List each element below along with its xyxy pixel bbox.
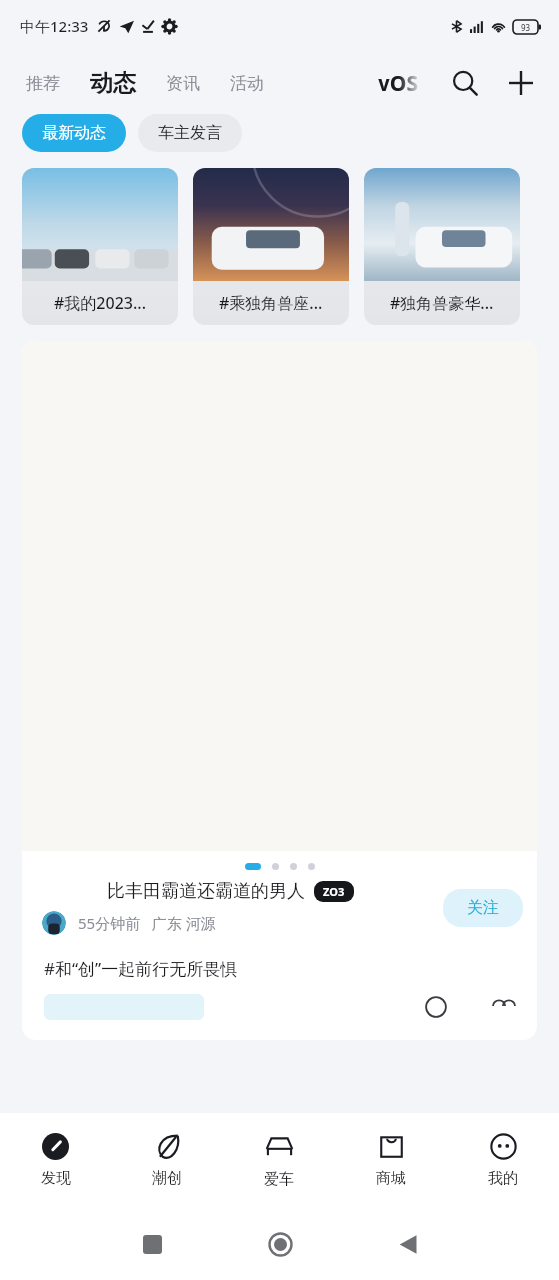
- staticText: 动态: [90, 69, 136, 98]
- button[interactable]: 发现: [0, 1113, 111, 1208]
- staticText: #独角兽豪华...: [390, 292, 494, 314]
- button[interactable]: Recents: [124, 1216, 180, 1272]
- staticText: 商城: [376, 1169, 406, 1188]
- staticText: 我的: [488, 1169, 518, 1188]
- button[interactable]: 车主发言: [138, 114, 242, 152]
- staticText: 车主发言: [158, 123, 222, 143]
- staticText: 活动: [230, 73, 264, 94]
- button[interactable]: 最新动态: [22, 114, 126, 152]
- staticText: 55分钟前 广东 河源: [78, 913, 216, 933]
- staticText: 中午12:33: [20, 16, 89, 36]
- button[interactable]: Home: [252, 1216, 308, 1272]
- button[interactable]: #乘独角兽座...: [193, 168, 349, 325]
- button[interactable]: Search: [445, 63, 485, 103]
- staticText: ZO3: [323, 884, 345, 899]
- button[interactable]: 动态: [88, 63, 138, 104]
- staticText: 爱车: [264, 1170, 294, 1189]
- button[interactable]: ᴠOS: [374, 65, 423, 102]
- staticText: #乘独角兽座...: [219, 292, 323, 314]
- button[interactable]: 我的: [447, 1113, 559, 1208]
- button[interactable]: 关注: [443, 889, 523, 927]
- staticText: 推荐: [26, 73, 60, 94]
- button[interactable]: 比丰田霸道还霸道的男人: [22, 341, 537, 1040]
- button[interactable]: Add: [501, 63, 541, 103]
- staticText: 资讯: [166, 73, 200, 94]
- button[interactable]: 潮创: [111, 1113, 223, 1208]
- staticText: #我的2023...: [54, 292, 147, 314]
- button[interactable]: #我的2023...: [22, 168, 178, 325]
- button[interactable]: 资讯: [164, 67, 202, 100]
- staticText: 最新动态: [42, 123, 106, 143]
- button[interactable]: 爱车: [223, 1113, 335, 1208]
- staticText: ᴠOS: [378, 69, 419, 98]
- staticText: #和“创”一起前行无所畏惧: [44, 957, 238, 980]
- staticText: 关注: [467, 898, 499, 918]
- button[interactable]: 商城: [335, 1113, 447, 1208]
- staticText: 潮创: [152, 1169, 182, 1188]
- staticText: 发现: [41, 1169, 71, 1188]
- button[interactable]: 推荐: [24, 67, 62, 100]
- staticText: 比丰田霸道还霸道的男人: [107, 880, 305, 903]
- button[interactable]: 活动: [228, 67, 266, 100]
- staticText: 93: [521, 22, 531, 33]
- button[interactable]: #独角兽豪华...: [364, 168, 520, 325]
- button[interactable]: Back: [380, 1216, 436, 1272]
